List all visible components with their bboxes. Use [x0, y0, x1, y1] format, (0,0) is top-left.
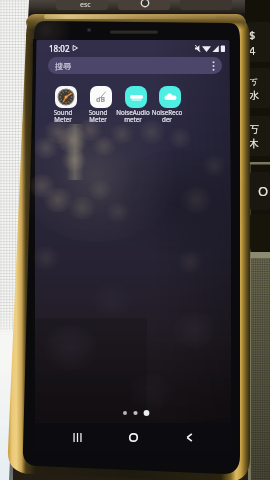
button[interactable]: Sound Meter [48, 86, 84, 108]
staticText: Sound Meter [80, 108, 116, 124]
staticText: 18:02 [49, 43, 70, 54]
button[interactable]: Recents [65, 425, 89, 449]
staticText: NoiseReco der [149, 108, 185, 124]
staticText: 丂 木 [249, 123, 259, 150]
button[interactable]: NoiseAudio meter [118, 86, 154, 108]
staticText: esc [80, 0, 91, 10]
staticText: Sound Meter [45, 108, 81, 124]
button[interactable]: 搜尋 [48, 57, 222, 74]
staticText: NoiseAudio meter [115, 108, 151, 124]
staticText: 搜尋 [55, 61, 71, 71]
button[interactable]: dB [83, 86, 119, 108]
button[interactable]: Home [121, 425, 145, 449]
button[interactable]: NoiseReco der [152, 86, 188, 108]
staticText: $ 4 [249, 27, 256, 58]
button[interactable]: Back [177, 425, 201, 449]
staticText: dB [96, 95, 106, 105]
staticText: ㄎ 水 [249, 75, 260, 102]
staticText: O [258, 182, 269, 200]
